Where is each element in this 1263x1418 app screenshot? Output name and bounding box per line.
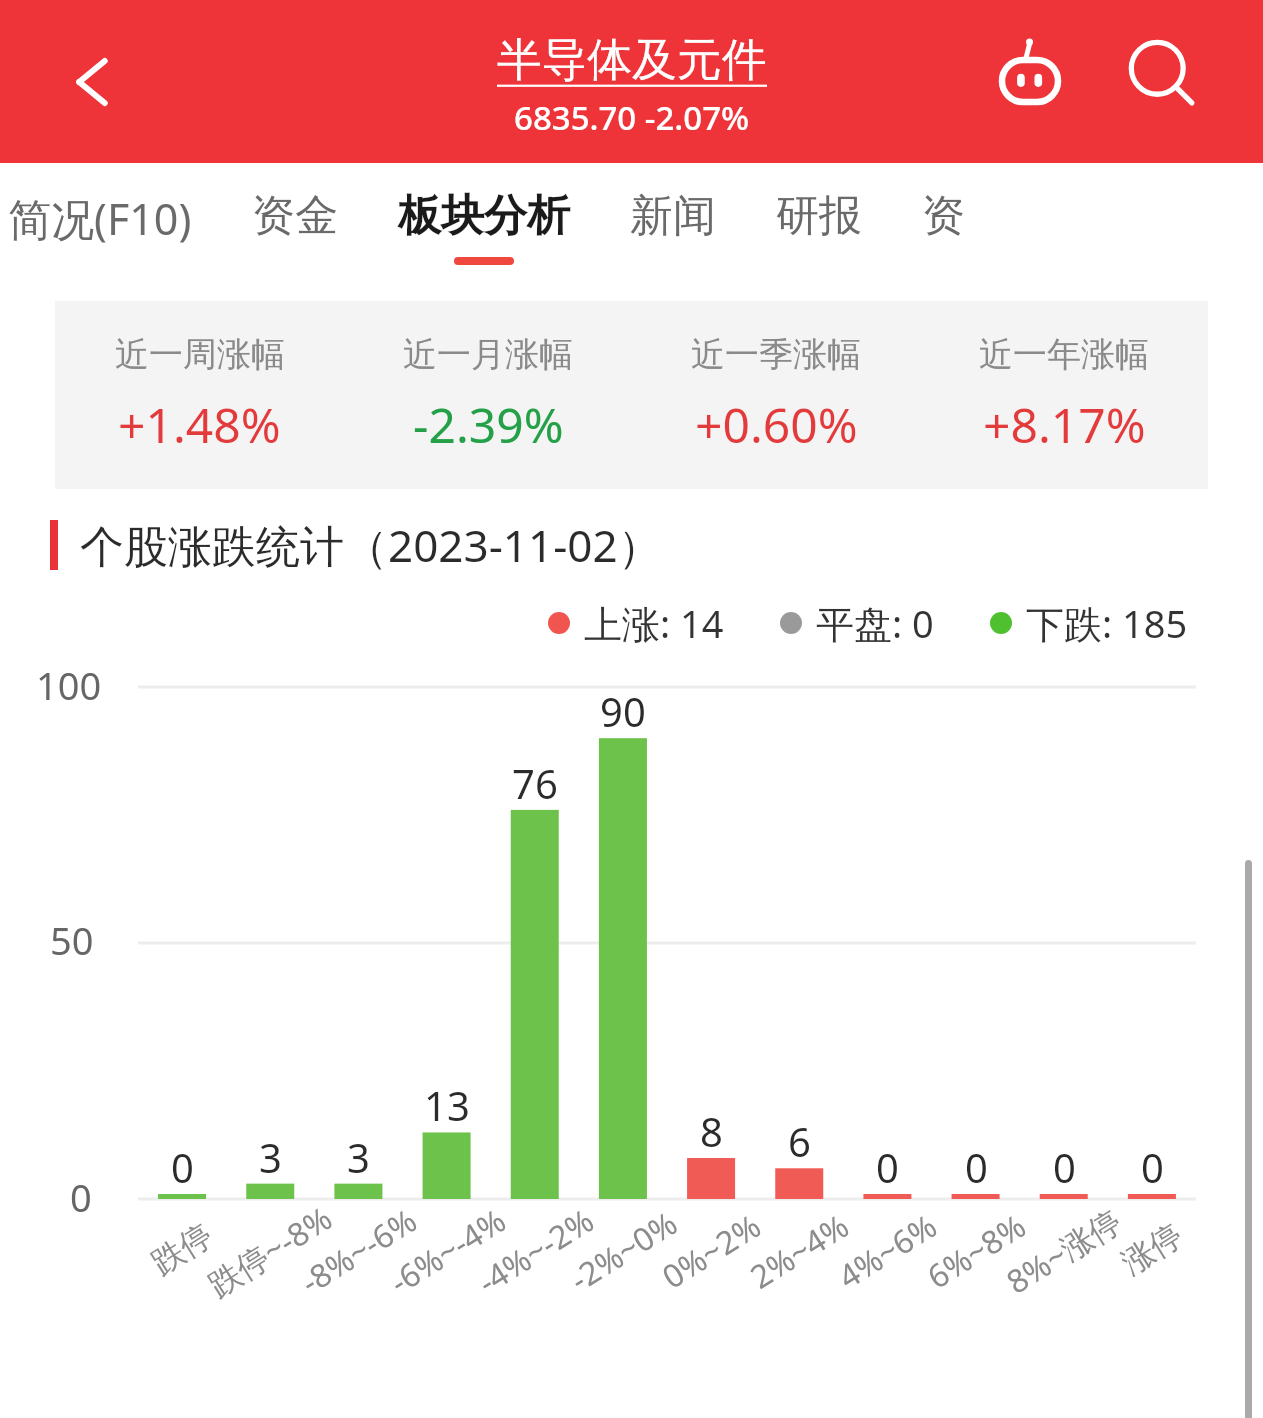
button[interactable]: 近一月涨幅 <box>344 333 632 457</box>
staticText: +0.60% <box>695 392 858 457</box>
staticText: 近一季涨幅 <box>691 333 861 376</box>
staticText: -2.39% <box>413 392 564 457</box>
staticText: 6835.70 -2.07% <box>514 95 750 140</box>
staticText: 上涨: 14 <box>584 597 724 649</box>
staticText: 50 <box>50 914 94 966</box>
staticText: +8.17% <box>983 392 1146 457</box>
staticText: 半导体及元件 <box>497 32 767 89</box>
staticText: 4%~6% <box>830 1203 945 1299</box>
staticText: 研报 <box>776 189 862 243</box>
button[interactable]: 近一季涨幅 <box>632 333 920 457</box>
staticText: 个股涨跌统计（2023-11-02） <box>80 515 662 575</box>
staticText: 3 <box>347 1130 370 1184</box>
staticText: 0 <box>1141 1140 1164 1194</box>
staticText: 2%~4% <box>742 1203 857 1299</box>
button[interactable]: 下跌: 185 <box>990 597 1188 649</box>
button[interactable]: 简况(F10) <box>8 163 192 285</box>
button[interactable]: 资金 <box>252 163 338 285</box>
staticText: 6%~8% <box>919 1203 1034 1299</box>
button[interactable]: 上涨: 14 <box>548 597 724 649</box>
staticText: -2%~0% <box>561 1201 686 1301</box>
staticText: -6%~-4% <box>381 1198 514 1304</box>
staticText: 0 <box>1053 1140 1076 1194</box>
staticText: 涨停 <box>1114 1215 1190 1283</box>
staticText: 13 <box>424 1078 470 1132</box>
staticText: 近一月涨幅 <box>403 333 573 376</box>
staticText: 资 <box>922 189 965 243</box>
staticText: 90 <box>600 684 646 738</box>
staticText: 板块分析 <box>398 189 570 243</box>
staticText: 简况(F10) <box>8 189 192 248</box>
button[interactable]: 研报 <box>776 163 862 285</box>
staticText: 0 <box>876 1140 899 1194</box>
staticText: 0 <box>70 1171 92 1223</box>
staticText: 跌停~-8% <box>200 1196 340 1306</box>
staticText: +1.48% <box>118 392 281 457</box>
button[interactable]: 新闻 <box>630 163 716 285</box>
staticText: 0 <box>171 1140 194 1194</box>
staticText: 8%~涨停 <box>998 1198 1130 1303</box>
staticText: 平盘: 0 <box>816 597 934 649</box>
staticText: 76 <box>512 756 558 810</box>
button[interactable]: 平盘: 0 <box>780 597 934 649</box>
button[interactable]: AI assistant <box>980 26 1080 126</box>
button[interactable]: 板块分析 <box>398 163 570 285</box>
staticText: 下跌: 185 <box>1026 597 1188 649</box>
staticText: 0 <box>965 1140 988 1194</box>
staticText: 资金 <box>252 189 338 243</box>
button[interactable]: 近一年涨幅 <box>920 333 1208 457</box>
staticText: 跌停 <box>144 1215 220 1283</box>
staticText: 0%~2% <box>654 1203 769 1299</box>
button[interactable]: 资 <box>922 163 965 285</box>
button[interactable]: Search <box>1115 28 1211 124</box>
staticText: 近一年涨幅 <box>979 333 1149 376</box>
button[interactable]: Back <box>48 47 118 117</box>
staticText: 新闻 <box>630 189 716 243</box>
staticText: 8 <box>700 1104 723 1158</box>
button[interactable]: 近一周涨幅 <box>55 333 344 457</box>
staticText: -4%~-2% <box>469 1198 602 1304</box>
staticText: -8%~-6% <box>292 1198 425 1304</box>
staticText: 100 <box>36 659 102 711</box>
staticText: 近一周涨幅 <box>115 333 285 376</box>
staticText: 3 <box>259 1130 282 1184</box>
staticText: 6 <box>788 1114 811 1168</box>
